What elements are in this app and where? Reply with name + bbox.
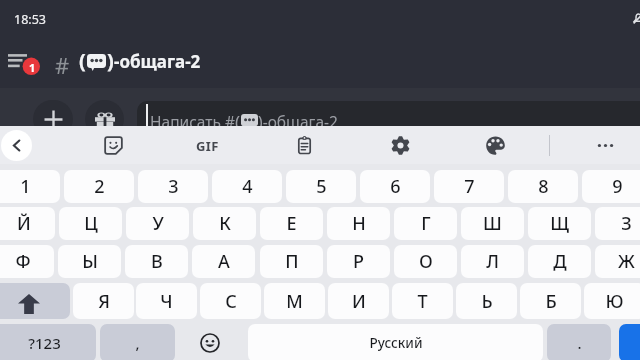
button[interactable]: GIF [191, 130, 223, 161]
button[interactable]: Русский [248, 324, 543, 360]
staticText: Й [17, 211, 31, 236]
staticText: Щ [550, 211, 569, 236]
staticText: 18:53 [14, 11, 46, 28]
button[interactable]: Л [461, 245, 524, 278]
staticText: 1 [29, 60, 36, 75]
staticText: Ь [481, 289, 493, 314]
button[interactable]: Theme [479, 130, 511, 161]
button[interactable]: В [125, 245, 188, 278]
button[interactable]: Д [528, 245, 591, 278]
button[interactable]: Settings [384, 130, 416, 161]
staticText: Ц [84, 211, 98, 236]
button[interactable]: 9 [582, 170, 640, 203]
button[interactable] [0, 283, 70, 319]
button[interactable]: , [100, 324, 175, 360]
button[interactable]: Е [260, 207, 323, 240]
button[interactable]: Ш [461, 207, 524, 240]
staticText: ( [235, 110, 241, 133]
button[interactable]: Р [327, 245, 390, 278]
staticText: Ж [618, 249, 635, 274]
staticText: Л [486, 249, 499, 274]
button[interactable]: С [200, 283, 261, 319]
button[interactable]: More options [589, 130, 621, 161]
staticText: Д [553, 249, 567, 274]
staticText: У [152, 211, 164, 236]
staticText: П [285, 249, 299, 274]
staticText: Я [98, 289, 110, 314]
button[interactable]: П [260, 245, 323, 278]
staticText: GIF [196, 137, 219, 155]
button[interactable]: Ч [136, 283, 197, 319]
button[interactable]: Ы [58, 245, 121, 278]
staticText: Р [353, 249, 364, 274]
button[interactable]: ?123 [0, 324, 96, 360]
button[interactable]: К [193, 207, 256, 240]
button[interactable]: 6 [360, 170, 430, 203]
staticText: ?123 [28, 333, 61, 353]
staticText: Ф [15, 249, 31, 274]
staticText: О [419, 249, 433, 274]
button[interactable]: Ф [0, 245, 54, 278]
staticText: Б [545, 289, 557, 314]
button[interactable]: Ц [59, 207, 122, 240]
staticText: Русский [369, 334, 423, 352]
button[interactable]: Ю [584, 283, 640, 319]
button[interactable]: Я [73, 283, 134, 319]
staticText: С [225, 289, 237, 314]
button[interactable]: Clipboard [288, 130, 320, 161]
staticText: В [151, 249, 163, 274]
staticText: Ч [160, 289, 173, 314]
button[interactable]: 4 [212, 170, 282, 203]
button[interactable]: . [547, 324, 611, 360]
button[interactable]: Add attachment [33, 100, 73, 138]
button[interactable]: Ь [456, 283, 517, 319]
staticText: 7 [464, 174, 475, 199]
staticText: -общага-2 [114, 50, 201, 73]
button[interactable]: Enter [619, 324, 640, 360]
button[interactable]: М [264, 283, 325, 319]
button[interactable]: Send a gift [85, 100, 124, 138]
button[interactable]: И [328, 283, 389, 319]
button[interactable]: Stickers [97, 130, 129, 161]
button[interactable]: Щ [528, 207, 591, 240]
staticText: И [352, 289, 366, 314]
button[interactable]: У [126, 207, 189, 240]
button[interactable]: Back [1, 130, 32, 161]
staticText: . [577, 333, 582, 353]
button[interactable]: 2 [64, 170, 134, 203]
button[interactable]: Г [394, 207, 457, 240]
button[interactable]: Б [520, 283, 581, 319]
staticText: 6 [390, 174, 401, 199]
button[interactable]: 1 [0, 170, 60, 203]
button[interactable]: А [192, 245, 255, 278]
staticText: ) [107, 47, 114, 74]
staticText: ( [79, 47, 86, 74]
staticText: А [218, 249, 230, 274]
button[interactable]: 3 [138, 170, 208, 203]
button[interactable]: О [394, 245, 457, 278]
staticText: Г [421, 211, 431, 236]
button[interactable]: Й [0, 207, 55, 240]
staticText: 1 [20, 174, 31, 199]
button[interactable]: Написать # [137, 101, 640, 139]
staticText: М [286, 289, 303, 314]
button[interactable]: Т [392, 283, 453, 319]
staticText: К [219, 211, 231, 236]
button[interactable]: Н [327, 207, 390, 240]
staticText: Ы [82, 249, 98, 274]
button[interactable]: 5 [286, 170, 356, 203]
staticText: Н [352, 211, 366, 236]
staticText: Написать # [150, 111, 235, 132]
button[interactable]: 7 [434, 170, 504, 203]
other: Notifications muted [632, 12, 640, 25]
button[interactable]: 8 [508, 170, 578, 203]
staticText: 5 [316, 174, 327, 199]
staticText: Ю [605, 289, 624, 314]
staticText: З [621, 211, 632, 236]
button[interactable]: Open channel list [2, 44, 46, 80]
staticText: 3 [168, 174, 179, 199]
staticText: # [55, 50, 70, 80]
button[interactable]: З [595, 207, 640, 240]
staticText: Т [417, 289, 428, 314]
button[interactable]: Ж [595, 245, 640, 278]
